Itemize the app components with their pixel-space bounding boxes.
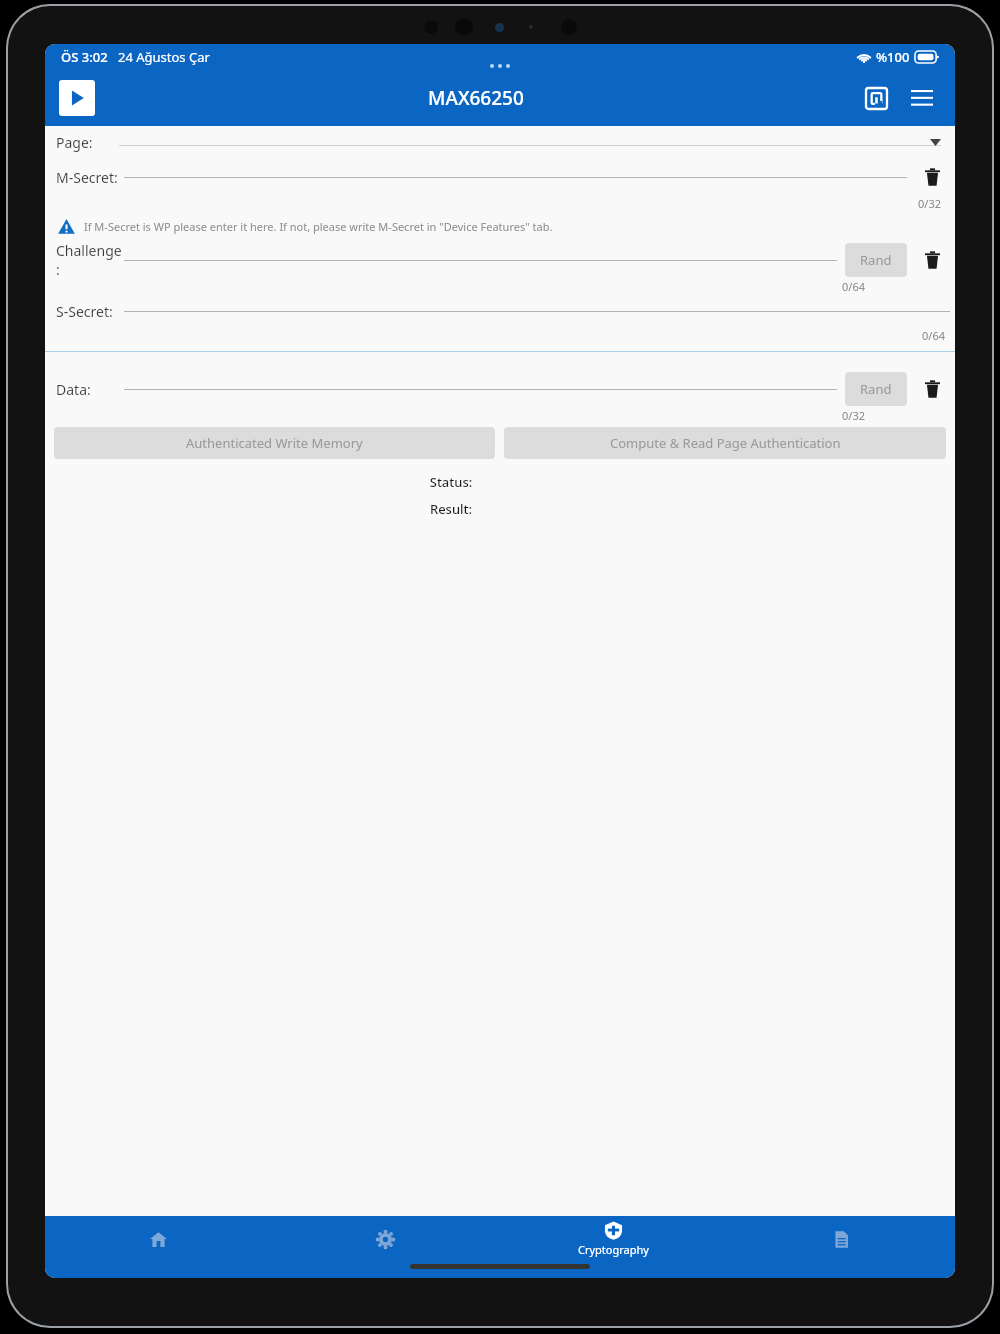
staticText: M-Secret: <box>56 168 124 187</box>
button[interactable]: Cryptography <box>499 1216 727 1262</box>
button[interactable]: Settings <box>272 1216 499 1262</box>
button[interactable]: Documents <box>727 1216 955 1262</box>
staticText: 0/32 <box>842 408 865 423</box>
staticText: Page: <box>56 133 93 152</box>
staticText: Authenticated Write Memory <box>186 434 363 452</box>
button[interactable]: Clear Challenge: <box>919 247 945 273</box>
staticText: Result: <box>45 500 857 518</box>
staticText: If M-Secret is WP please enter it here. … <box>84 219 553 234</box>
button[interactable]: Rand <box>845 372 907 406</box>
staticText: Rand <box>860 380 892 398</box>
staticText: %100 <box>876 48 910 66</box>
staticText: Rand <box>860 251 892 269</box>
staticText: Status: <box>45 473 857 491</box>
button[interactable]: Run <box>59 80 95 116</box>
staticText: ÖS 3:02 <box>61 48 108 66</box>
staticText: S-Secret: <box>56 302 124 321</box>
button[interactable] <box>119 139 941 146</box>
button[interactable]: Clear Data: <box>919 376 945 402</box>
button[interactable]: Authenticated Write Memory <box>54 427 495 459</box>
button[interactable]: Rand <box>845 243 907 277</box>
staticText: 0/32 <box>918 196 941 211</box>
button[interactable]: Compute & Read Page Authentication <box>504 427 946 459</box>
staticText: Compute & Read Page Authentication <box>610 434 841 452</box>
button[interactable]: Home <box>45 1216 272 1262</box>
staticText: Data: <box>56 380 124 399</box>
staticText: 24 Ağustos Çar <box>118 48 210 66</box>
staticText: MAX66250 <box>428 85 524 111</box>
staticText: Cryptography <box>578 1242 649 1257</box>
button[interactable]: Clear M-Secret: <box>919 164 945 190</box>
staticText: 0/64 <box>922 328 945 343</box>
button[interactable]: Menu <box>903 79 941 117</box>
staticText: Challenge: <box>56 241 124 279</box>
staticText: 0/64 <box>842 279 865 294</box>
button[interactable]: Chip <box>857 79 895 117</box>
